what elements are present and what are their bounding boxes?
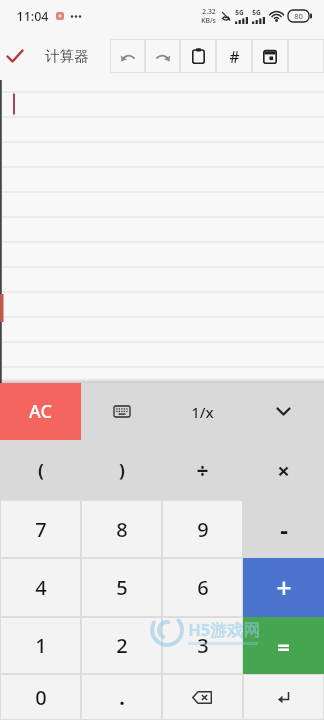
button[interactable]: 1/x xyxy=(162,383,243,440)
staticText: # xyxy=(229,46,240,67)
staticText: 4 xyxy=(35,574,47,601)
staticText: 2 xyxy=(116,632,128,659)
staticText: 80 xyxy=(294,11,303,21)
button[interactable]: ÷ xyxy=(162,440,243,500)
staticText: 计算器 xyxy=(45,47,89,65)
staticText: 5 xyxy=(116,574,128,601)
button[interactable]: 0 xyxy=(0,674,81,720)
button[interactable] xyxy=(81,383,162,440)
staticText: × xyxy=(277,455,290,485)
button[interactable]: = xyxy=(243,617,324,674)
button[interactable]: 8 xyxy=(81,500,162,558)
staticText: 0 xyxy=(35,684,47,711)
button[interactable]: . xyxy=(81,674,162,720)
button[interactable]: × xyxy=(243,440,324,500)
staticText: 6 xyxy=(197,574,209,601)
button[interactable]: 9 xyxy=(162,500,243,558)
button[interactable]: AC xyxy=(0,383,81,440)
button[interactable]: ( xyxy=(0,440,81,500)
staticText: 7 xyxy=(35,516,47,543)
button[interactable] xyxy=(288,39,324,73)
button[interactable] xyxy=(110,39,145,73)
staticText: . xyxy=(119,684,125,711)
button[interactable] xyxy=(243,674,324,720)
staticText: 9 xyxy=(197,516,209,543)
staticText: ( xyxy=(38,458,44,482)
button[interactable] xyxy=(162,674,243,720)
button[interactable]: 4 xyxy=(0,558,81,617)
staticText: - xyxy=(280,513,288,546)
staticText: = xyxy=(277,631,290,661)
staticText: 1/x xyxy=(191,402,214,422)
button[interactable]: 3 xyxy=(162,617,243,674)
staticText: + xyxy=(276,569,292,606)
button[interactable]: 5 xyxy=(81,558,162,617)
button[interactable]: 2 xyxy=(81,617,162,674)
staticText: 2.32 xyxy=(202,7,216,16)
staticText: 11:04 xyxy=(16,8,49,25)
staticText: 8 xyxy=(116,516,128,543)
button[interactable]: 1 xyxy=(0,617,81,674)
button[interactable]: + xyxy=(243,558,324,617)
staticText: H5游戏网 xyxy=(188,618,260,641)
staticText: ÷ xyxy=(196,456,209,485)
button[interactable] xyxy=(243,383,324,440)
button[interactable] xyxy=(252,39,288,73)
staticText: KB/s xyxy=(201,16,216,25)
button[interactable]: 7 xyxy=(0,500,81,558)
staticText: 5G xyxy=(235,8,244,17)
staticText: 5G xyxy=(252,8,261,17)
button[interactable] xyxy=(145,39,180,73)
staticText: 1 xyxy=(35,632,47,659)
button[interactable]: # xyxy=(216,39,252,73)
button[interactable]: ) xyxy=(81,440,162,500)
button[interactable]: 6 xyxy=(162,558,243,617)
staticText: 3 xyxy=(197,632,209,659)
button[interactable]: - xyxy=(243,500,324,558)
staticText: AC xyxy=(29,399,52,424)
staticText: ) xyxy=(119,458,125,482)
button[interactable] xyxy=(180,39,216,73)
button[interactable] xyxy=(6,49,24,63)
